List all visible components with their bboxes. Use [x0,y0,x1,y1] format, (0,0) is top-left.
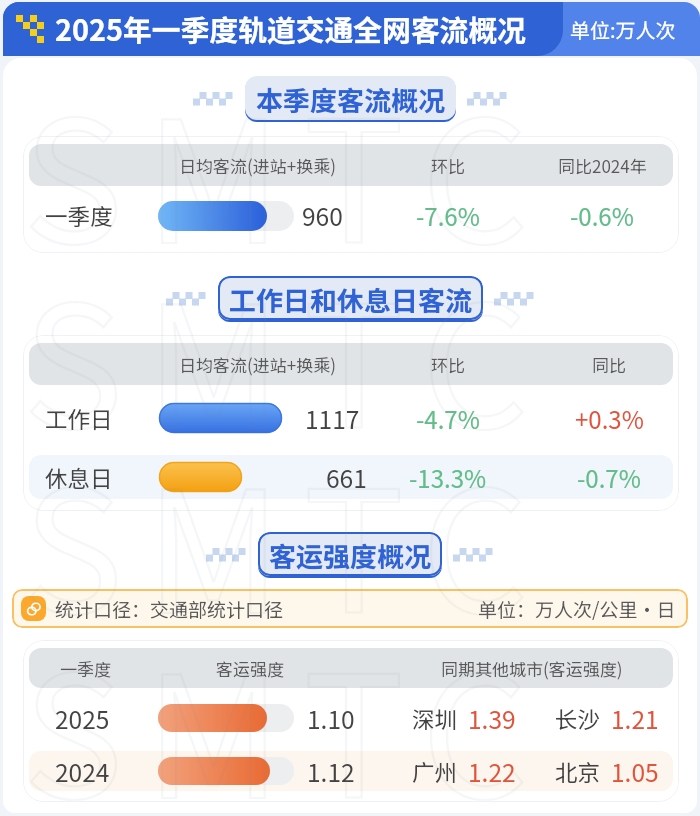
staticText: +0.3% [575,401,644,436]
staticText: 661 [326,460,367,495]
staticText: 同比 [592,352,626,377]
staticText: SMTC [23,233,551,476]
staticText: 日均客流(进站+换乘) [179,352,336,377]
staticText: 客运强度概况 [269,536,431,573]
staticText: 1.05 [611,754,659,789]
staticText: 1.22 [468,754,516,789]
staticText: 深圳 [412,702,458,735]
button[interactable]: 2025 [29,688,673,748]
staticText: 日均客流(进站+换乘) [179,153,336,178]
staticText: 北京 [555,755,601,788]
staticText: 2024 [55,754,110,789]
staticText: 1.10 [307,701,355,736]
staticText: SMTC [23,58,551,291]
staticText: 环比 [431,352,465,377]
staticText: 1.21 [611,701,659,736]
staticText: -0.6% [570,198,634,233]
staticText: 2025年一季度轨道交通全网客流概况 [55,8,527,50]
staticText: 统计口径：交通部统计口径 [55,595,284,623]
staticText: -7.6% [416,198,480,233]
button[interactable]: 客运强度概况 [258,532,442,576]
button[interactable]: 休息日 [29,451,673,503]
staticText: 环比 [431,153,465,178]
staticText: 工作日 [45,402,113,435]
other: Link [21,596,46,621]
staticText: 960 [302,198,343,233]
staticText: -0.7% [577,460,641,495]
staticText: 同比2024年 [558,153,647,178]
staticText: 一季度 [60,656,111,681]
button[interactable]: 2024 [29,748,673,794]
staticText: 长沙 [555,702,601,735]
staticText: 工作日和休息日客流 [229,280,472,317]
staticText: 2025 [55,701,110,736]
staticText: SMTC [23,788,551,813]
staticText: 休息日 [45,461,113,494]
staticText: -13.3% [409,460,487,495]
staticText: SMTC [23,418,551,661]
staticText: 1.39 [468,701,516,736]
staticText: SMTC [23,603,551,813]
staticText: 单位:万人次 [570,15,676,44]
staticText: -4.7% [416,401,480,436]
button[interactable]: 工作日 [29,385,673,451]
staticText: 一季度 [45,199,113,232]
staticText: 单位：万人次/公里·日 [478,595,676,623]
button[interactable]: 工作日和休息日客流 [218,276,483,320]
staticText: 1.12 [307,754,355,789]
button[interactable]: Link [12,589,688,628]
staticText: 同期其他城市(客运强度) [441,656,623,681]
staticText: 本季度客流概况 [256,80,445,117]
button[interactable]: 本季度客流概况 [245,76,456,120]
staticText: 广州 [412,755,458,788]
staticText: 1117 [305,401,360,436]
staticText: 客运强度 [216,656,284,681]
